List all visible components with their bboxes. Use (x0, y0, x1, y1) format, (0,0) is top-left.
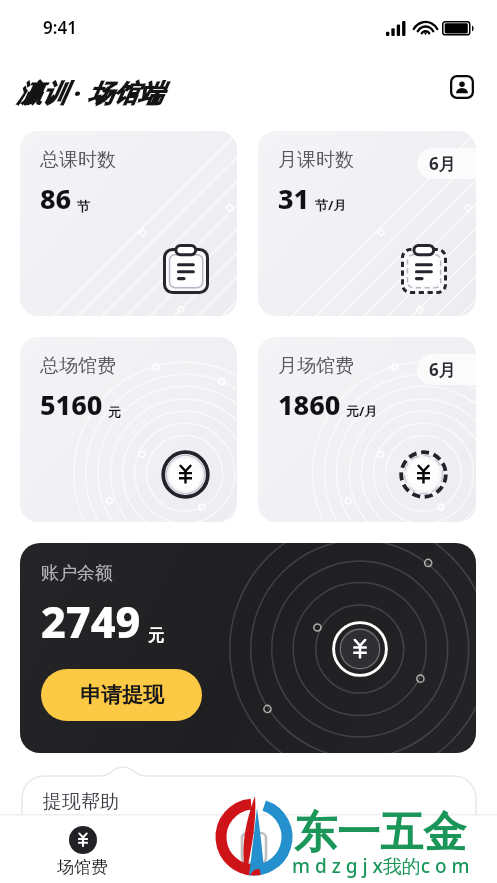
button[interactable]: 申请提现 (41, 669, 202, 721)
button[interactable]: 月场馆费 (258, 337, 476, 522)
staticText: 总课时数 (40, 148, 116, 172)
staticText: 元 (108, 404, 121, 420)
button[interactable]: 总场馆费 (20, 337, 237, 522)
staticText: 场馆费 (57, 857, 108, 878)
button[interactable]: 6月 (417, 148, 476, 179)
button[interactable]: 月课时数 (258, 131, 476, 316)
staticText: 6月 (429, 152, 456, 175)
staticText: 5160 (40, 386, 103, 423)
staticText: 提现帮助 (43, 790, 119, 814)
staticText: 瀛训 · 场馆端 (17, 75, 163, 109)
staticText: 31 (278, 180, 310, 217)
staticText: m d z g j x我的c o m (292, 853, 470, 879)
staticText: 申请提现 (80, 682, 164, 708)
staticText: 月场馆费 (278, 354, 354, 378)
button[interactable]: 场馆费 (54, 826, 111, 878)
staticText: 账户余额 (41, 562, 113, 585)
button[interactable]: 总课时数 (20, 131, 237, 316)
staticText: 2749 (41, 592, 141, 651)
staticText: 月课时数 (278, 148, 354, 172)
staticText: 1860 (278, 386, 341, 423)
button[interactable]: Profile (450, 75, 474, 99)
staticText: 总场馆费 (40, 354, 116, 378)
staticText: 节/月 (315, 196, 347, 214)
button[interactable]: 6月 (417, 354, 476, 385)
staticText: 元/月 (346, 402, 378, 420)
staticText: 9:41 (43, 16, 77, 39)
staticText: 86 (40, 180, 72, 217)
staticText: 元 (148, 626, 164, 646)
staticText: 节 (77, 198, 90, 214)
staticText: 东一五金 (294, 806, 466, 860)
staticText: 6月 (429, 358, 456, 381)
